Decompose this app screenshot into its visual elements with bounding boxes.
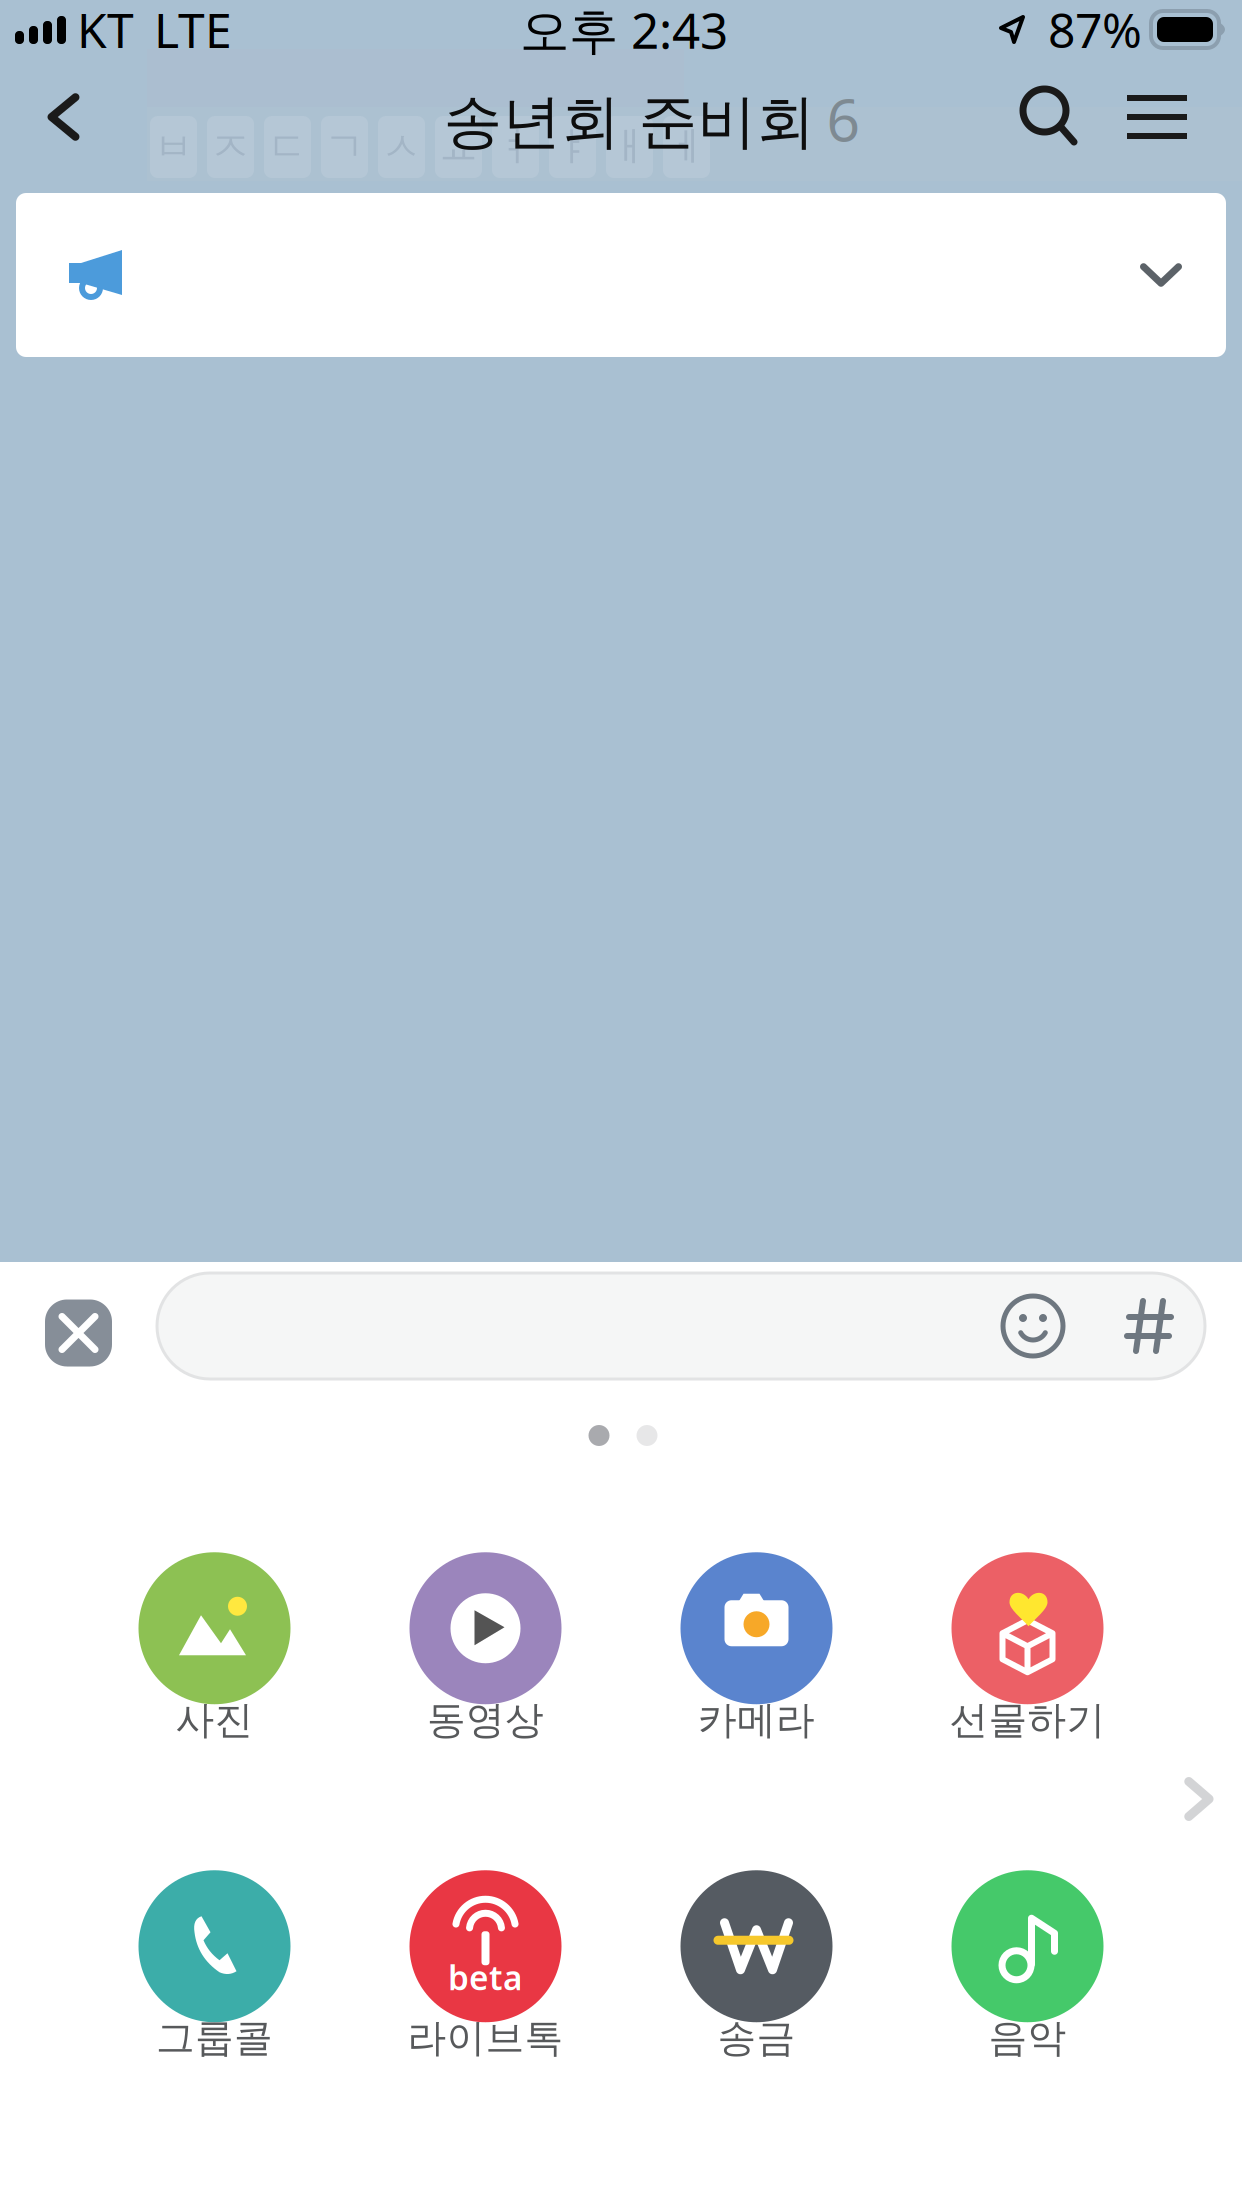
button[interactable]: 그룹콜	[79, 1857, 350, 2083]
staticText: 선물하기	[949, 1696, 1105, 1744]
button[interactable]: 동영상	[350, 1539, 621, 1765]
staticText: ㅈ	[210, 122, 250, 171]
button[interactable]: 선물하기	[892, 1539, 1163, 1765]
button[interactable]: 음악	[892, 1857, 1163, 2083]
button[interactable]: Hashtag	[1103, 1273, 1197, 1379]
staticText: beta	[448, 1955, 523, 1999]
staticText: ㅔ	[666, 122, 706, 171]
button[interactable]: 사진	[79, 1539, 350, 1765]
button[interactable]: Emoticons	[963, 1273, 1103, 1379]
staticText: 송년회 준비회	[443, 86, 815, 158]
staticText: ㅐ	[609, 122, 649, 171]
staticText: LTE	[154, 0, 232, 61]
staticText: 동영상	[427, 1696, 544, 1744]
staticText: KT	[77, 0, 134, 61]
button[interactable]: 카메라	[621, 1539, 892, 1765]
staticText: 6	[826, 80, 860, 158]
staticText: ㅂ	[153, 122, 193, 171]
button[interactable]: Menu	[1100, 59, 1214, 175]
button[interactable]: Close attachments	[45, 1299, 112, 1366]
staticText: ㅑ	[552, 122, 592, 171]
staticText: 카메라	[698, 1696, 815, 1744]
staticText: ㅅ	[381, 122, 421, 171]
staticText: 오후 2:43	[520, 0, 728, 62]
staticText: ㄷ	[267, 122, 307, 171]
button[interactable]: 송금	[621, 1857, 892, 2083]
button[interactable]	[16, 193, 1226, 357]
button[interactable]: Search	[1000, 59, 1100, 175]
staticText: ㅛ	[438, 122, 478, 171]
staticText: ㄱ	[324, 122, 364, 171]
staticText: 87%	[1048, 0, 1142, 61]
staticText: 송금	[717, 2014, 795, 2062]
staticText: 사진	[175, 1696, 253, 1744]
staticText: ㅕ	[495, 122, 535, 171]
button[interactable]: beta	[350, 1857, 621, 2083]
staticText: 그룹콜	[156, 2014, 273, 2062]
staticText: 음악	[988, 2014, 1066, 2062]
staticText: 라이브톡	[407, 2014, 563, 2062]
button[interactable]: Back	[0, 59, 128, 175]
